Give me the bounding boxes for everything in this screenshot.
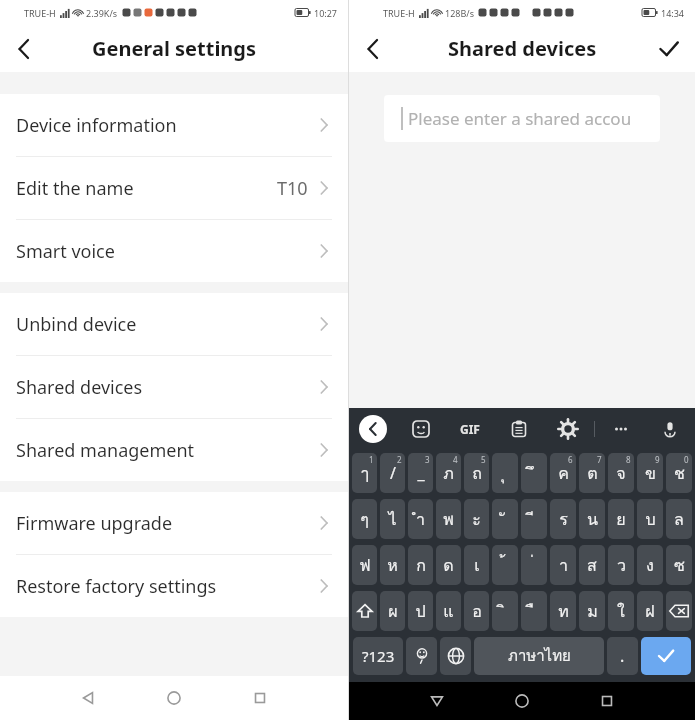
button[interactable]: _ <box>408 453 433 493</box>
button[interactable]: เ <box>464 545 489 585</box>
staticText: บ <box>645 507 656 532</box>
button[interactable]: ป <box>408 591 433 631</box>
button[interactable]: ง <box>637 545 663 585</box>
staticText: Unbind device <box>16 312 137 337</box>
button[interactable]: Space <box>474 637 604 675</box>
staticText: Device information <box>16 113 177 138</box>
button[interactable]: ม <box>579 591 605 631</box>
button[interactable]: Unbind device <box>0 293 348 355</box>
button[interactable]: แ <box>436 591 461 631</box>
button[interactable]: ฝ <box>637 591 663 631</box>
button[interactable]: น <box>579 499 605 539</box>
button[interactable]: More <box>606 414 636 444</box>
button[interactable]: ?123 <box>353 637 403 675</box>
button[interactable]: ข <box>637 453 663 493</box>
button[interactable]: ร <box>550 499 576 539</box>
button[interactable]: Hide keyboard <box>415 682 459 720</box>
button[interactable]: ล <box>666 499 692 539</box>
staticText: ำ <box>416 507 425 532</box>
staticText: ร <box>559 507 568 532</box>
staticText: ต <box>587 461 598 486</box>
button[interactable]: Restore factory settings <box>0 555 348 617</box>
button[interactable]: Emoji <box>406 637 437 675</box>
button[interactable]: Period <box>607 637 638 675</box>
button[interactable]: Clipboard <box>504 414 534 444</box>
button[interactable]: อ <box>464 591 489 631</box>
button[interactable]: Smart voice <box>0 220 348 282</box>
button[interactable]: Edit the name <box>0 157 348 219</box>
button[interactable]: ผ <box>380 591 405 631</box>
button[interactable]: ฟ <box>352 545 377 585</box>
button[interactable]: ี <box>521 499 547 539</box>
button[interactable]: ุ <box>492 453 518 493</box>
button[interactable]: Settings <box>553 414 583 444</box>
staticText: ข <box>645 461 656 486</box>
staticText: T10 <box>277 176 308 201</box>
button[interactable]: Device information <box>0 94 348 156</box>
button[interactable]: Recents <box>238 676 282 720</box>
button[interactable]: ้ <box>492 545 518 585</box>
button[interactable]: ใ <box>608 591 634 631</box>
button[interactable]: Back <box>359 415 387 443</box>
staticText: ?123 <box>362 646 395 666</box>
button[interactable]: ั <box>492 499 518 539</box>
staticText: TRUE-H <box>24 7 56 19</box>
button[interactable]: Firmware upgrade <box>0 492 348 554</box>
staticText: TRUE-H <box>383 7 415 19</box>
button[interactable]: ๆ <box>352 499 377 539</box>
staticText: ฝ <box>645 599 655 624</box>
button[interactable]: พ <box>436 499 461 539</box>
button[interactable]: ช <box>666 453 692 493</box>
button[interactable]: Back <box>353 29 393 69</box>
button[interactable]: ิ <box>492 591 518 631</box>
button[interactable]: ไ <box>380 499 405 539</box>
button[interactable]: ภ <box>436 453 461 493</box>
staticText: ถ <box>472 461 482 486</box>
button[interactable]: ึ <box>521 453 547 493</box>
staticText: Shared management <box>16 438 195 463</box>
button[interactable]: GIF <box>455 414 485 444</box>
button[interactable]: ะ <box>464 499 489 539</box>
button[interactable]: ส <box>579 545 605 585</box>
button[interactable]: Recents <box>585 682 629 720</box>
button[interactable]: ด <box>436 545 461 585</box>
button[interactable]: Sticker <box>406 414 436 444</box>
staticText: ห <box>387 553 398 578</box>
button[interactable]: / <box>380 453 405 493</box>
button[interactable]: Home <box>500 682 544 720</box>
staticText: ม <box>587 599 598 624</box>
button[interactable]: Language <box>440 637 471 675</box>
button[interactable]: Shared management <box>0 419 348 481</box>
staticText: Shared devices <box>448 35 597 62</box>
button[interactable]: Shared devices <box>0 356 348 418</box>
button[interactable]: Voice input <box>655 414 685 444</box>
button[interactable]: ต <box>579 453 605 493</box>
button[interactable]: ก <box>408 545 433 585</box>
button[interactable]: Home <box>152 676 196 720</box>
button[interactable]: ๅ <box>352 453 377 493</box>
button[interactable]: Backspace <box>666 591 692 631</box>
button[interactable]: Back <box>4 29 44 69</box>
button[interactable]: Confirm <box>649 29 689 69</box>
staticText: 128B/s <box>445 7 474 19</box>
button[interactable]: Enter <box>641 637 691 675</box>
button[interactable]: บ <box>637 499 663 539</box>
button[interactable]: ำ <box>408 499 433 539</box>
staticText: 0 <box>684 454 689 465</box>
button[interactable]: ห <box>380 545 405 585</box>
button[interactable]: Back <box>66 676 110 720</box>
button[interactable]: Please enter a shared accou <box>384 95 660 142</box>
button[interactable]: Shift <box>352 591 377 631</box>
button[interactable]: จ <box>608 453 634 493</box>
button[interactable]: า <box>550 545 576 585</box>
button[interactable]: ถ <box>464 453 489 493</box>
button[interactable]: ค <box>550 453 576 493</box>
button[interactable]: ย <box>608 499 634 539</box>
button[interactable]: ื <box>521 591 547 631</box>
staticText: ฟ <box>359 553 371 578</box>
button[interactable]: ว <box>608 545 634 585</box>
button[interactable]: ท <box>550 591 576 631</box>
staticText: ะ <box>472 507 481 532</box>
button[interactable]: ่ <box>521 545 547 585</box>
button[interactable]: ซ <box>666 545 692 585</box>
